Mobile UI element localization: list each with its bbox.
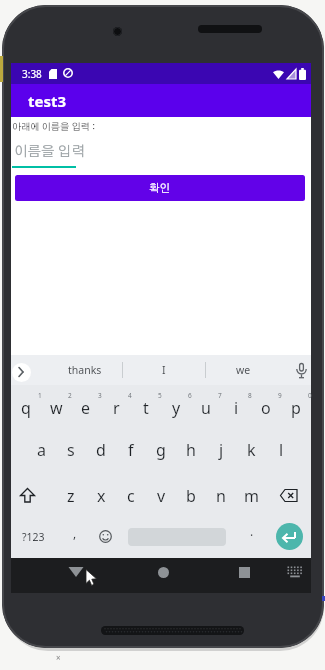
button[interactable] xyxy=(158,567,169,578)
staticText: l xyxy=(279,439,284,461)
staticText: i xyxy=(234,397,239,419)
button[interactable]: e xyxy=(71,388,101,428)
button[interactable]: q xyxy=(11,388,41,428)
staticText: z xyxy=(67,485,75,507)
button[interactable]: c xyxy=(116,476,146,516)
button[interactable]: g xyxy=(146,430,176,470)
button[interactable]: w xyxy=(41,388,71,428)
staticText: 확인 xyxy=(149,183,171,194)
button[interactable]: n xyxy=(206,476,236,516)
staticText: s xyxy=(67,439,75,461)
button[interactable]: I xyxy=(123,355,205,385)
staticText: k xyxy=(247,439,256,461)
button[interactable]: v xyxy=(146,476,176,516)
button[interactable]: s xyxy=(56,430,86,470)
button[interactable]: h xyxy=(176,430,206,470)
button[interactable] xyxy=(287,566,303,578)
button[interactable]: 이름을 입력 xyxy=(14,142,124,162)
staticText: h xyxy=(186,439,196,461)
staticText: t xyxy=(143,397,149,419)
button[interactable]: b xyxy=(176,476,206,516)
button[interactable]: t xyxy=(131,388,161,428)
button[interactable]: l xyxy=(266,430,296,470)
staticText: 0 xyxy=(308,391,312,400)
button[interactable]: u xyxy=(191,388,221,428)
button[interactable]: we xyxy=(206,355,281,385)
button[interactable]: z xyxy=(56,476,86,516)
button[interactable]: ?123 xyxy=(17,519,49,555)
button[interactable]: a xyxy=(26,430,56,470)
button[interactable] xyxy=(295,363,308,379)
staticText: o xyxy=(261,397,271,419)
staticText: 이름을 입력 xyxy=(14,145,85,159)
button[interactable]: thanks xyxy=(44,355,126,385)
staticText: ?123 xyxy=(22,530,45,544)
button[interactable] xyxy=(276,523,303,550)
button[interactable]: d xyxy=(86,430,116,470)
staticText: 5 xyxy=(158,391,162,400)
staticText: thanks xyxy=(68,363,102,377)
staticText: 4 xyxy=(128,391,132,400)
staticText: 1 xyxy=(38,391,42,400)
staticText: 3:38 xyxy=(22,67,42,81)
staticText: y xyxy=(172,397,181,419)
staticText: . xyxy=(250,523,254,539)
button[interactable]: o xyxy=(251,388,281,428)
staticText: d xyxy=(96,439,106,461)
button[interactable]: k xyxy=(236,430,266,470)
button[interactable]: m xyxy=(236,476,266,516)
staticText: b xyxy=(186,485,196,507)
staticText: f xyxy=(128,439,134,461)
button[interactable]: . xyxy=(238,513,266,549)
staticText: e xyxy=(81,397,91,419)
staticText: test3 xyxy=(28,91,67,111)
staticText: u xyxy=(201,397,211,419)
staticText: 3 xyxy=(98,391,102,400)
staticText: 7 xyxy=(218,391,222,400)
button[interactable] xyxy=(99,530,112,543)
button[interactable] xyxy=(280,489,298,502)
button[interactable]: 확인 xyxy=(15,175,305,201)
button[interactable] xyxy=(12,363,31,382)
button[interactable]: x xyxy=(86,476,116,516)
button[interactable]: f xyxy=(116,430,146,470)
staticText: v xyxy=(157,485,166,507)
staticText: r xyxy=(113,397,120,419)
staticText: 6 xyxy=(188,391,192,400)
staticText: , xyxy=(73,525,77,541)
staticText: 9 xyxy=(278,391,282,400)
button[interactable]: j xyxy=(206,430,236,470)
staticText: we xyxy=(236,363,251,377)
staticText: x xyxy=(97,485,106,507)
staticText: w xyxy=(50,397,63,419)
staticText: × xyxy=(56,652,61,663)
button[interactable]: , xyxy=(61,515,89,551)
button[interactable] xyxy=(19,488,36,503)
staticText: I xyxy=(162,363,166,377)
staticText: 2 xyxy=(68,391,72,400)
staticText: p xyxy=(291,397,301,419)
staticText: 8 xyxy=(248,391,252,400)
staticText: q xyxy=(21,397,31,419)
staticText: n xyxy=(216,485,226,507)
button[interactable]: i xyxy=(221,388,251,428)
button[interactable]: r xyxy=(101,388,131,428)
staticText: j xyxy=(219,439,224,461)
button[interactable]: y xyxy=(161,388,191,428)
staticText: m xyxy=(244,485,259,507)
staticText: c xyxy=(127,485,135,507)
staticText: g xyxy=(156,439,166,461)
button[interactable] xyxy=(68,566,84,578)
staticText: a xyxy=(37,439,46,461)
button[interactable]: p xyxy=(281,388,311,428)
staticText: 아래에 이름을 입력 : xyxy=(12,122,96,132)
